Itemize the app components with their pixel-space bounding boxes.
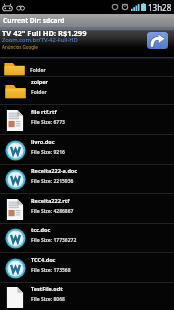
staticText: Receita222-a.doc xyxy=(31,167,78,174)
button[interactable]: TestFile.odt xyxy=(0,283,174,310)
button[interactable]: Current Dir: sdcard xyxy=(0,14,174,27)
staticText: Folder xyxy=(31,89,47,96)
button[interactable]: tcc.doc xyxy=(0,224,174,252)
staticText: File Size: 8068 xyxy=(31,296,65,303)
staticText: zoiper xyxy=(31,78,49,85)
staticText: tcc.doc xyxy=(31,226,51,233)
staticText: File Size: 9216 xyxy=(31,149,65,156)
staticText: File Size: 4286867 xyxy=(31,208,74,215)
staticText: TV 42" Full HD: R$1.299 xyxy=(2,28,87,38)
staticText: file rtf.rtf xyxy=(31,108,57,115)
button[interactable]: Folder xyxy=(0,59,174,76)
button[interactable]: file rtf.rtf xyxy=(0,105,174,134)
staticText: TCC4.doc xyxy=(31,256,56,263)
staticText: Anúncios Google xyxy=(2,44,38,50)
button[interactable]: Open advertisement xyxy=(147,32,168,49)
staticText: Receita222.rtf xyxy=(31,197,70,204)
staticText: Folder xyxy=(30,67,46,74)
button[interactable]: zoiper xyxy=(0,76,174,104)
staticText: File Size: 6773 xyxy=(31,119,65,126)
staticText: TestFile.odt xyxy=(31,285,63,292)
button[interactable]: Receita222.rtf xyxy=(0,194,174,223)
staticText: File Size: 173568 xyxy=(31,267,71,274)
button[interactable]: livro.doc xyxy=(0,135,174,164)
button[interactable]: TV 42" Full HD: R$1.299 xyxy=(0,27,174,57)
staticText: Current Dir: sdcard xyxy=(3,16,65,25)
button[interactable]: Receita222-a.doc xyxy=(0,165,174,193)
staticText: File Size: 17736272 xyxy=(31,237,77,244)
staticText: Zoom.com.br/TV-42-Full-HD xyxy=(2,36,78,44)
staticText: File Size: 2215936 xyxy=(31,178,74,185)
staticText: 13h28 xyxy=(148,2,172,13)
button[interactable]: TCC4.doc xyxy=(0,253,174,282)
staticText: livro.doc xyxy=(31,138,55,145)
